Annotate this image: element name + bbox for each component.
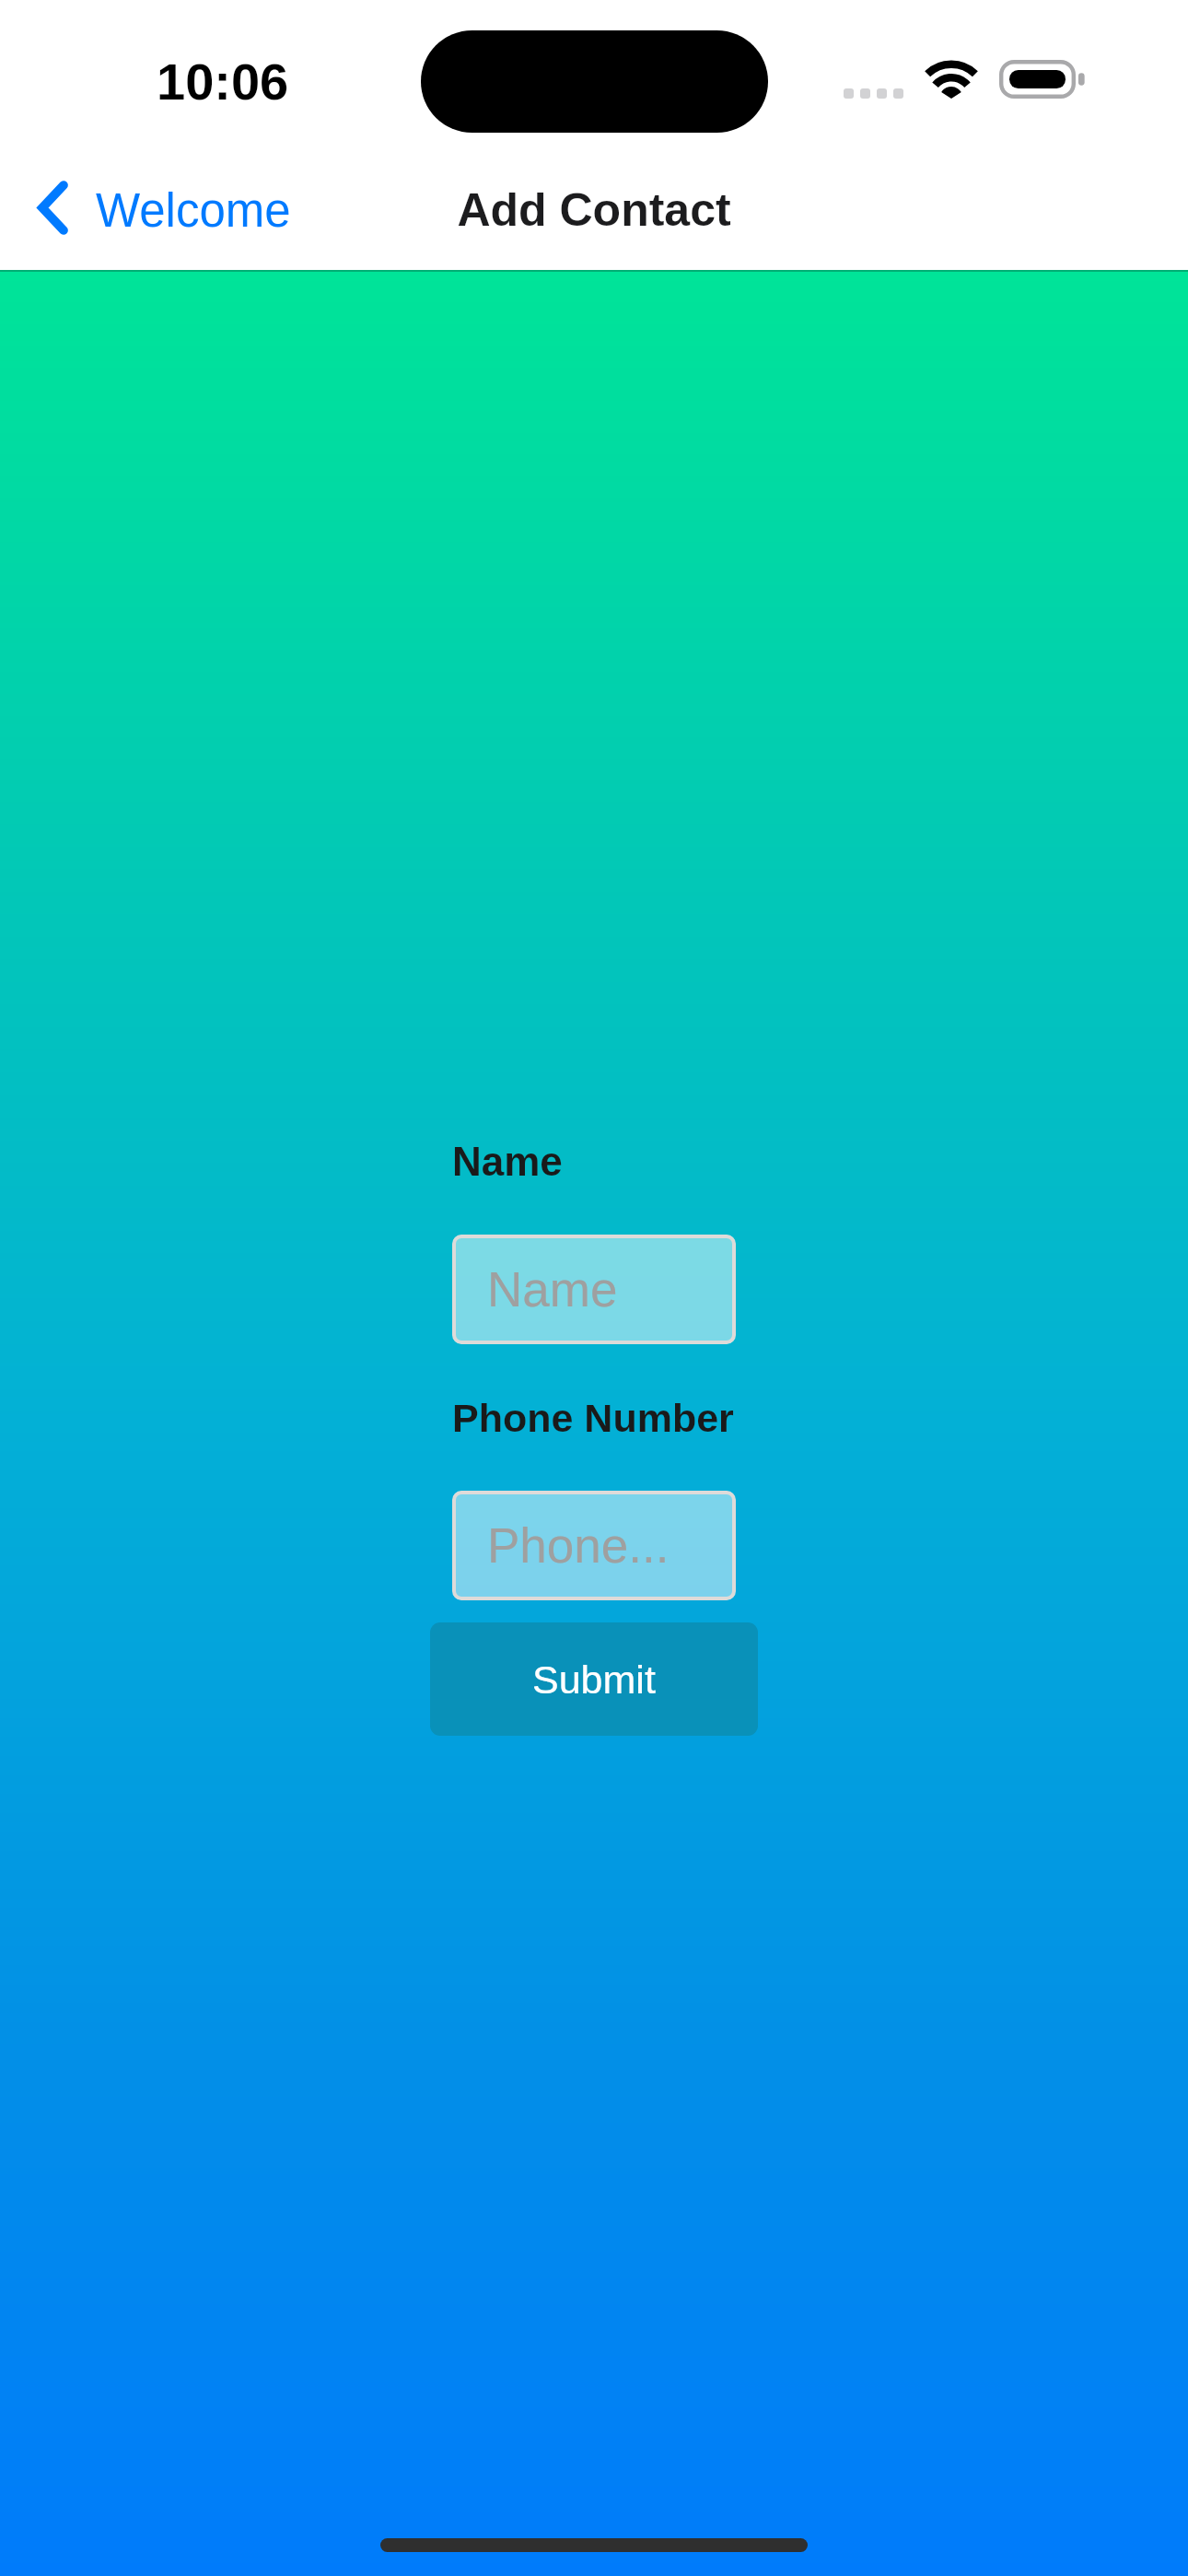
staticText: Phone Number — [452, 1396, 734, 1440]
button[interactable]: Name — [452, 1235, 736, 1344]
other: Battery — [999, 60, 1076, 99]
other: Back — [38, 181, 68, 235]
button[interactable]: Back — [25, 159, 304, 261]
staticText: Phone... — [487, 1518, 670, 1573]
staticText: Name — [452, 1139, 563, 1184]
staticText: Name — [487, 1262, 618, 1317]
other: Wi-Fi — [925, 59, 978, 99]
button[interactable]: Submit — [430, 1622, 758, 1736]
button[interactable]: Phone... — [452, 1491, 736, 1600]
staticText: Submit — [532, 1657, 656, 1702]
staticText: Add Contact — [0, 184, 1188, 236]
staticText: Welcome — [96, 184, 291, 237]
staticText: 10:06 — [157, 53, 289, 111]
